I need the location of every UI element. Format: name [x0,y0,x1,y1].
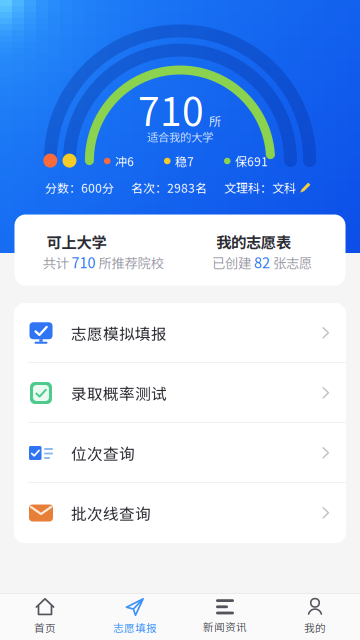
staticText: 首页 [34,620,56,635]
staticText: 适合我的大学 [147,128,213,145]
staticText: 保691 [235,152,268,170]
button[interactable]: 新闻资讯 [180,593,270,640]
button[interactable]: 首页 [0,593,90,640]
staticText: 共计 [42,253,68,272]
staticText: 名次：2983名 [131,179,207,196]
button[interactable]: 可上大学 [14,214,180,285]
button[interactable]: 批次线查询 [14,483,346,543]
staticText: 所推荐院校 [98,253,163,272]
staticText: 志愿填报 [113,620,157,635]
staticText: 冲6 [115,152,134,170]
staticText: 张志愿 [273,253,312,272]
staticText: 批次线查询 [71,502,151,524]
staticText: 82 [251,251,273,272]
button[interactable]: 我的志愿表 [180,214,345,285]
staticText: 志愿模拟填报 [71,322,167,344]
staticText: 我的志愿表 [216,230,291,253]
button[interactable]: 位次查询 [14,423,346,483]
staticText: 我的 [304,620,326,635]
staticText: 分数：600分 [45,179,114,196]
staticText: 录取概率测试 [71,382,167,404]
button[interactable]: 录取概率测试 [14,363,346,423]
staticText: 所 [209,111,222,130]
staticText: 已创建 [212,253,251,272]
staticText: 位次查询 [71,442,135,464]
button[interactable]: 志愿填报 [90,593,180,640]
button[interactable]: 志愿模拟填报 [14,303,346,363]
staticText: 稳7 [175,152,194,170]
button[interactable]: 我的 [270,593,360,640]
staticText: 文理科：文科 [224,179,296,196]
staticText: 可上大学 [46,230,106,253]
staticText: 710 [68,251,98,272]
staticText: 710 [138,81,204,137]
staticText: 新闻资讯 [203,619,247,634]
